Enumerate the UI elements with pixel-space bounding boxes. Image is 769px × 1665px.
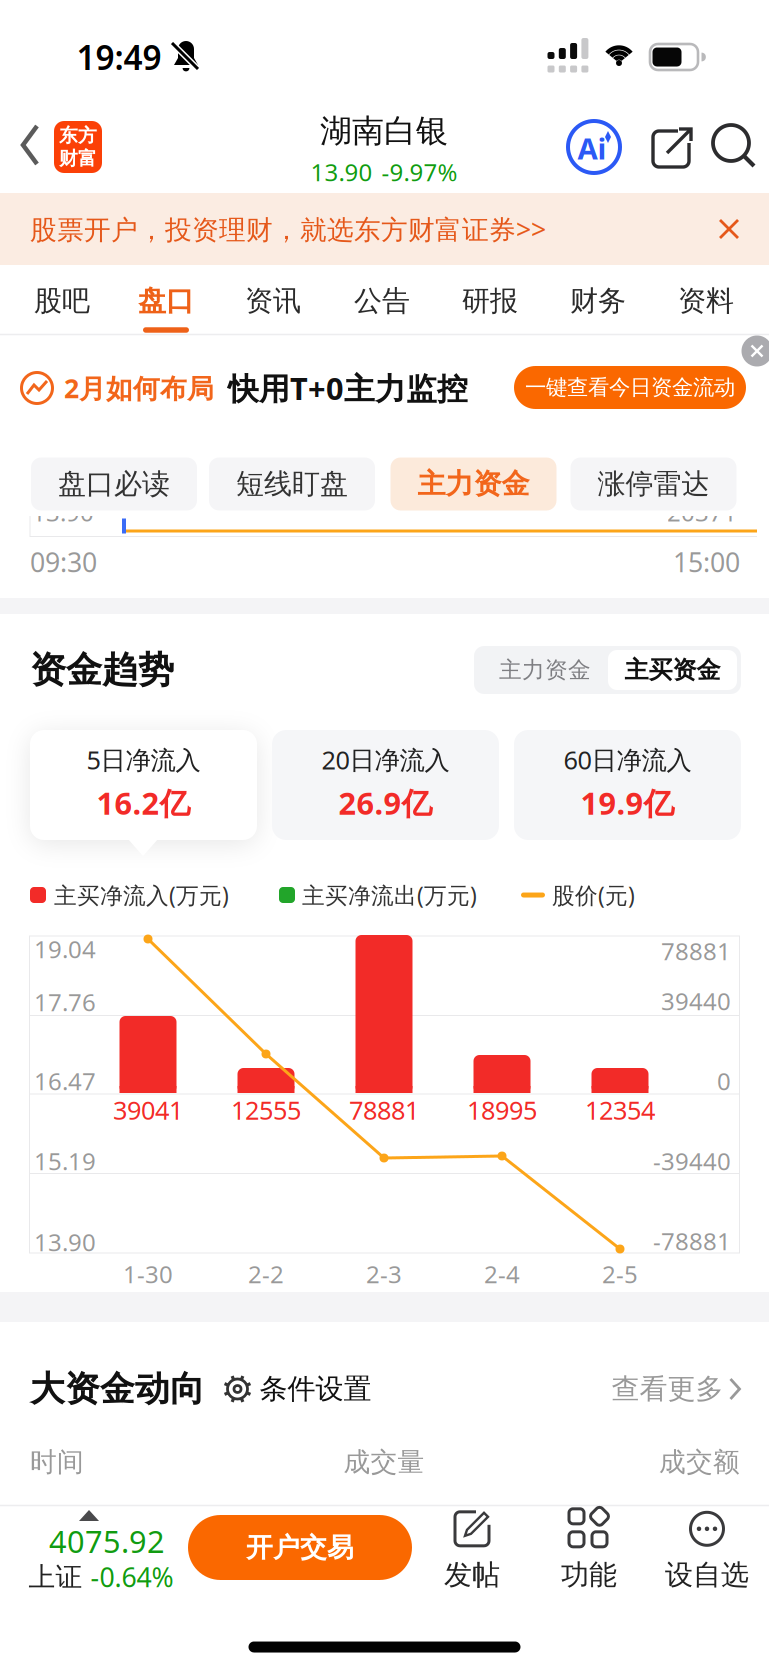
staticText: 5日净流入 xyxy=(86,743,200,776)
button[interactable]: 涨停雷达 xyxy=(570,457,736,510)
button[interactable]: Back xyxy=(21,125,43,169)
button[interactable]: 短线盯盘 xyxy=(209,457,375,510)
button[interactable]: Close ad xyxy=(741,335,769,366)
staticText: 主买资金 xyxy=(624,655,720,685)
staticText: -0.64% xyxy=(90,1559,173,1595)
button[interactable]: 主力资金 xyxy=(480,646,610,694)
staticText: Ai xyxy=(577,128,606,167)
button[interactable]: 股吧 xyxy=(14,271,110,331)
staticText: 39440 xyxy=(661,985,731,1017)
button[interactable]: 查看更多 xyxy=(611,1372,742,1406)
staticText: 39041 xyxy=(113,1093,183,1127)
button[interactable]: 公告 xyxy=(334,271,430,331)
staticText: 条件设置 xyxy=(259,1372,371,1406)
button[interactable]: 盘口必读 xyxy=(31,457,197,510)
staticText: 18995 xyxy=(467,1093,537,1127)
staticText: 设自选 xyxy=(665,1558,749,1592)
staticText: 主买净流入(万元) xyxy=(54,880,229,910)
button[interactable]: Close banner xyxy=(717,217,741,241)
staticText: 快用T+0主力监控 xyxy=(228,368,468,408)
staticText: 13.90 xyxy=(32,496,94,528)
staticText: -39440 xyxy=(653,1145,731,1177)
button[interactable]: AI xyxy=(568,121,620,173)
staticText: 26.9亿 xyxy=(338,782,432,823)
staticText: 2-4 xyxy=(484,1258,520,1290)
staticText: 0 xyxy=(717,1065,731,1097)
staticText: 研报 xyxy=(462,284,518,318)
staticText: 主力资金 xyxy=(417,467,529,501)
staticText: 19.04 xyxy=(34,933,96,965)
button[interactable]: 60日净流入 xyxy=(514,730,741,840)
staticText: 资讯 xyxy=(245,284,301,318)
staticText: 短线盯盘 xyxy=(236,467,348,501)
staticText: 主力资金 xyxy=(499,656,591,684)
button[interactable]: 东方财富 xyxy=(54,121,102,173)
staticText: 大资金动向 xyxy=(30,1368,205,1410)
button[interactable]: 条件设置 xyxy=(222,1372,371,1406)
staticText: 公告 xyxy=(354,284,410,318)
button[interactable]: 研报 xyxy=(442,271,538,331)
staticText: 湖南白银 xyxy=(320,111,448,151)
staticText: 盘口 xyxy=(138,284,194,318)
staticText: 东方 xyxy=(59,124,97,147)
button[interactable]: 资料 xyxy=(658,271,754,331)
button[interactable]: 功能 xyxy=(534,1497,644,1603)
staticText: -9.97% xyxy=(381,156,457,188)
staticText: 20371 xyxy=(667,496,737,528)
button[interactable]: 一键查看今日资金流动 xyxy=(514,366,746,409)
staticText: 2-5 xyxy=(602,1258,638,1290)
staticText: 一键查看今日资金流动 xyxy=(525,374,735,401)
button[interactable]: 资讯 xyxy=(225,271,321,331)
staticText: 上证 xyxy=(28,1561,82,1593)
button[interactable]: 4075.92 xyxy=(7,1503,187,1591)
staticText: 成交量 xyxy=(343,1446,424,1478)
button[interactable]: 盘口 xyxy=(118,271,214,331)
button[interactable]: 开户交易 xyxy=(188,1515,412,1580)
button[interactable]: 5日净流入 xyxy=(30,730,257,840)
staticText: 15:00 xyxy=(673,544,740,580)
staticText: 78881 xyxy=(661,935,731,967)
staticText: 开户交易 xyxy=(246,1531,354,1564)
staticText: 19:49 xyxy=(76,35,161,79)
button[interactable]: 股票开户，投资理财，就选东方财富证券>> xyxy=(30,211,610,247)
button[interactable]: 20日净流入 xyxy=(272,730,499,840)
staticText: 1-30 xyxy=(123,1258,173,1290)
staticText: 13.90 xyxy=(310,156,372,188)
staticText: 功能 xyxy=(561,1558,617,1592)
staticText: 财务 xyxy=(570,284,626,318)
staticText: 资金趋势 xyxy=(30,648,174,692)
staticText: 2-2 xyxy=(248,1258,284,1290)
staticText: 16.2亿 xyxy=(96,782,190,823)
button[interactable]: 主力资金 xyxy=(390,457,556,510)
staticText: 12354 xyxy=(585,1093,655,1127)
staticText: 资料 xyxy=(678,284,734,318)
staticText: 78881 xyxy=(349,1093,419,1127)
staticText: 盘口必读 xyxy=(58,467,170,501)
button[interactable]: 设自选 xyxy=(642,1497,769,1603)
staticText: 2-3 xyxy=(366,1258,402,1290)
staticText: 成交额 xyxy=(659,1446,740,1478)
staticText: 15.19 xyxy=(34,1145,96,1177)
staticText: 财富 xyxy=(59,147,97,170)
staticText: 查看更多 xyxy=(611,1372,723,1406)
staticText: 时间 xyxy=(30,1446,84,1478)
staticText: 涨停雷达 xyxy=(597,467,709,501)
staticText: 19.9亿 xyxy=(580,782,674,823)
staticText: 股价(元) xyxy=(552,880,635,910)
staticText: 股票开户，投资理财，就选东方财富证券>> xyxy=(30,211,546,247)
staticText: 2月如何布局 xyxy=(64,370,214,406)
button[interactable]: 主买资金 xyxy=(608,650,737,690)
button[interactable]: Share xyxy=(650,128,692,168)
button[interactable]: 财务 xyxy=(550,271,646,331)
staticText: 16.47 xyxy=(34,1065,96,1097)
staticText: -78881 xyxy=(653,1225,731,1257)
button[interactable]: Search xyxy=(712,125,756,169)
staticText: 09:30 xyxy=(30,544,97,580)
staticText: 发帖 xyxy=(444,1558,500,1592)
staticText: 股吧 xyxy=(34,284,90,318)
staticText: 12555 xyxy=(231,1093,301,1127)
button[interactable]: 发帖 xyxy=(417,1497,527,1603)
staticText: 13.90 xyxy=(34,1226,96,1258)
staticText: 17.76 xyxy=(34,986,96,1018)
staticText: 20日净流入 xyxy=(321,743,449,776)
